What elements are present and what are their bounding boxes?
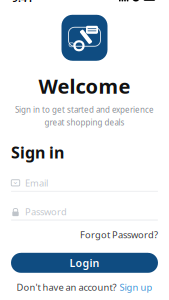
button[interactable]: Don't have an account?	[16, 281, 152, 293]
staticText: 9:41	[12, 0, 33, 5]
staticText: ⌄	[12, 177, 19, 186]
staticText: Sign in to get started and experience	[15, 104, 154, 115]
button[interactable]: Login	[11, 253, 158, 273]
staticText: Email	[25, 177, 48, 189]
button[interactable]: ⌄	[11, 175, 158, 192]
button[interactable]: Password	[11, 204, 158, 220]
staticText: Don't have an account?	[16, 281, 116, 293]
staticText: Sign up	[119, 281, 152, 293]
button[interactable]: Forgot Password?	[80, 228, 158, 241]
staticText: Sign in	[11, 142, 64, 163]
staticText: Forgot Password?	[80, 228, 158, 241]
staticText: great shopping deals	[44, 117, 124, 128]
staticText: Login	[69, 256, 99, 270]
staticText: Password	[25, 205, 67, 218]
staticText: Welcome	[38, 73, 130, 99]
